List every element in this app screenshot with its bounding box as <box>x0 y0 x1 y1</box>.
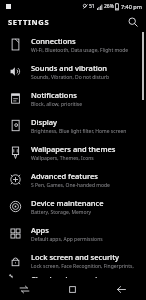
staticText: Wi-Fi, Bluetooth, Data usage, Flight mod… <box>31 47 129 54</box>
button[interactable]: Notifications <box>0 85 146 112</box>
staticText: Display <box>31 117 58 127</box>
staticText: Sounds and vibration <box>31 63 108 73</box>
button[interactable]: Connections <box>0 31 146 58</box>
staticText: Device maintenance <box>31 198 104 208</box>
staticText: Default apps, App permissions <box>31 236 103 243</box>
staticText: 26% <box>104 3 114 10</box>
staticText: Sounds, Vibration, Do not disturb <box>31 74 110 81</box>
staticText: Connections <box>31 36 76 46</box>
staticText: Lock screen and security <box>31 252 119 262</box>
staticText: Cloud and accounts <box>31 274 102 278</box>
staticText: Apps <box>31 225 49 235</box>
staticText: Wallpapers and themes <box>31 144 116 154</box>
button[interactable]: Device maintenance <box>0 193 146 220</box>
staticText: SETTINGS <box>8 17 50 27</box>
button[interactable]: Wallpapers and themes <box>0 139 146 166</box>
staticText: S Pen, Games, One-handed mode <box>31 182 110 189</box>
staticText: Wallpapers, Themes, Icons <box>31 155 94 162</box>
button[interactable]: Advanced features <box>0 166 146 193</box>
staticText: Block, allow, prioritise <box>31 101 83 108</box>
staticText: Lock screen, Face Recognition, Fingerpri… <box>31 263 142 270</box>
button[interactable]: Recents <box>0 278 48 300</box>
staticText: 7:40 pm <box>121 3 142 10</box>
staticText: Advanced features <box>31 171 98 181</box>
staticText: Battery, Storage, Memory <box>31 209 92 216</box>
button[interactable]: Back <box>97 278 146 300</box>
button[interactable]: Sounds and vibration <box>0 58 146 85</box>
staticText: 51 <box>89 3 95 10</box>
staticText: Notifications <box>31 90 77 100</box>
button[interactable]: Cloud and accounts <box>0 274 146 278</box>
staticText: Brightness, Blue light filter, Home scre… <box>31 128 127 135</box>
button[interactable]: Apps <box>0 220 146 247</box>
button[interactable]: Display <box>0 112 146 139</box>
button[interactable]: Home <box>48 278 97 300</box>
button[interactable]: Search <box>126 15 140 29</box>
button[interactable]: Lock screen and security <box>0 247 146 274</box>
